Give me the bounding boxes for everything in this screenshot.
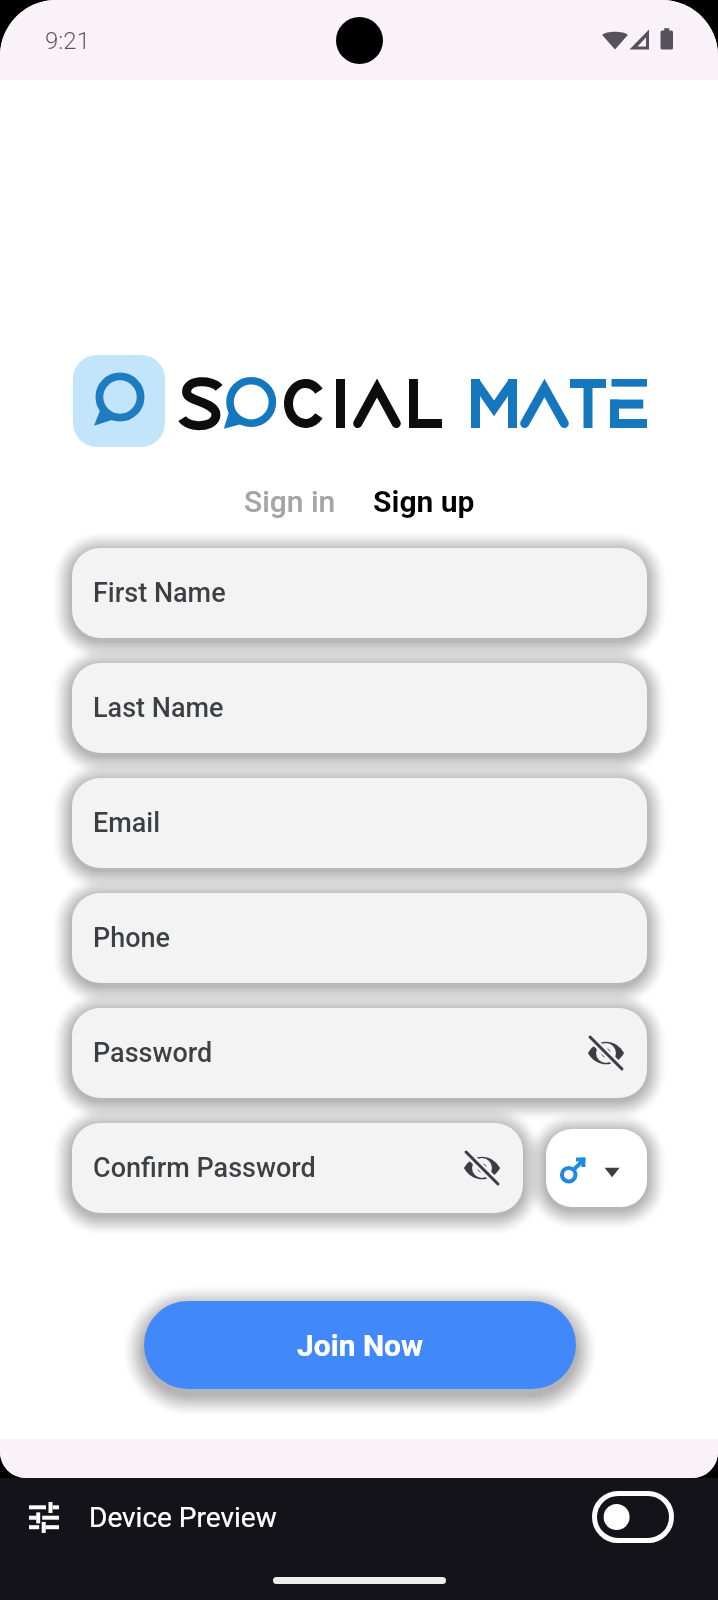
button[interactable]: Last Name <box>72 663 647 753</box>
staticText: First Name <box>93 577 226 609</box>
button[interactable]: Password <box>72 1008 647 1098</box>
staticText: Sign up <box>373 484 475 519</box>
button[interactable]: Email <box>72 778 647 868</box>
button[interactable]: Phone <box>72 893 647 983</box>
button[interactable]: Sign in <box>232 475 348 528</box>
staticText: Confirm Password <box>93 1152 316 1184</box>
staticText: Email <box>93 807 161 839</box>
staticText: Join Now <box>297 1328 424 1363</box>
button[interactable]: Join Now <box>144 1301 576 1389</box>
staticText: Device Preview <box>89 1501 277 1534</box>
button[interactable]: Toggle device preview <box>592 1491 674 1543</box>
staticText: Password <box>93 1037 213 1069</box>
button[interactable]: Show password <box>581 1028 631 1078</box>
button[interactable]: First Name <box>72 548 647 638</box>
staticText: Phone <box>93 922 171 954</box>
button[interactable]: Device settings <box>22 1495 66 1539</box>
button[interactable]: Show password <box>457 1143 507 1193</box>
button[interactable]: Sign up <box>361 475 487 528</box>
button[interactable]: Confirm Password <box>72 1123 523 1213</box>
button[interactable]: Select gender <box>546 1129 647 1207</box>
staticText: Sign in <box>244 484 336 519</box>
staticText: Last Name <box>93 692 224 724</box>
staticText: 9:21 <box>45 27 90 55</box>
